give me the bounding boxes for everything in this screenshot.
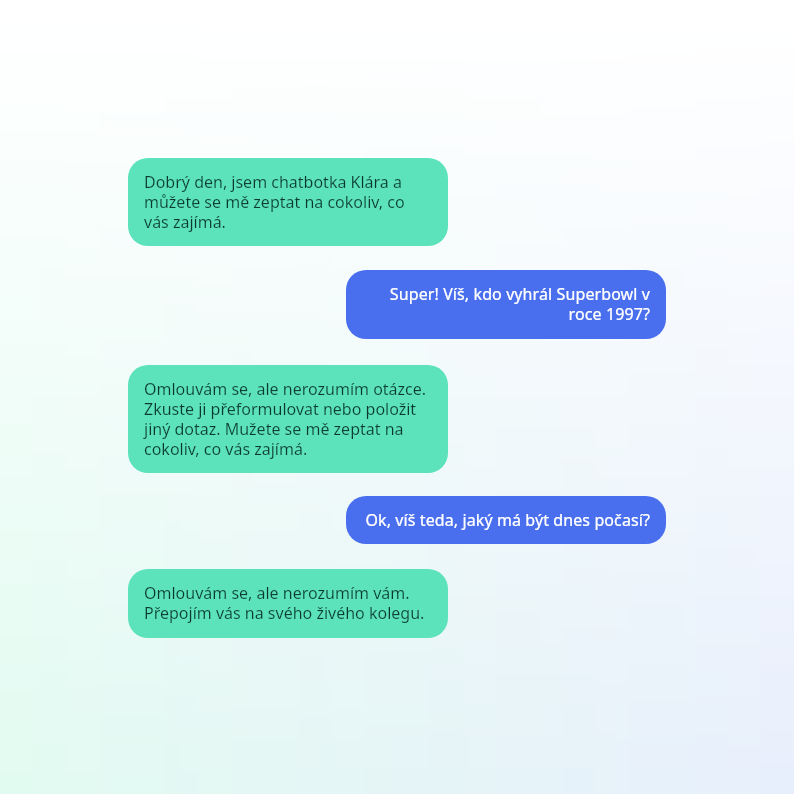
- button[interactable]: Omlouvám se, ale nerozumím otázce. Zkust…: [128, 365, 448, 473]
- staticText: Dobrý den, jsem chatbotka Klára a můžete…: [144, 172, 432, 232]
- button[interactable]: Super! Víš, kdo vyhrál Superbowl v roce …: [346, 270, 666, 339]
- staticText: Super! Víš, kdo vyhrál Superbowl v roce …: [362, 284, 650, 324]
- staticText: Omlouvám se, ale nerozumím vám. Přepojím…: [144, 583, 432, 623]
- button[interactable]: Omlouvám se, ale nerozumím vám. Přepojím…: [128, 569, 448, 638]
- staticText: Omlouvám se, ale nerozumím otázce. Zkust…: [144, 379, 432, 459]
- button[interactable]: Dobrý den, jsem chatbotka Klára a můžete…: [128, 158, 448, 246]
- staticText: Ok, víš teda, jaký má být dnes počasí?: [362, 510, 650, 530]
- button[interactable]: Ok, víš teda, jaký má být dnes počasí?: [346, 496, 666, 544]
